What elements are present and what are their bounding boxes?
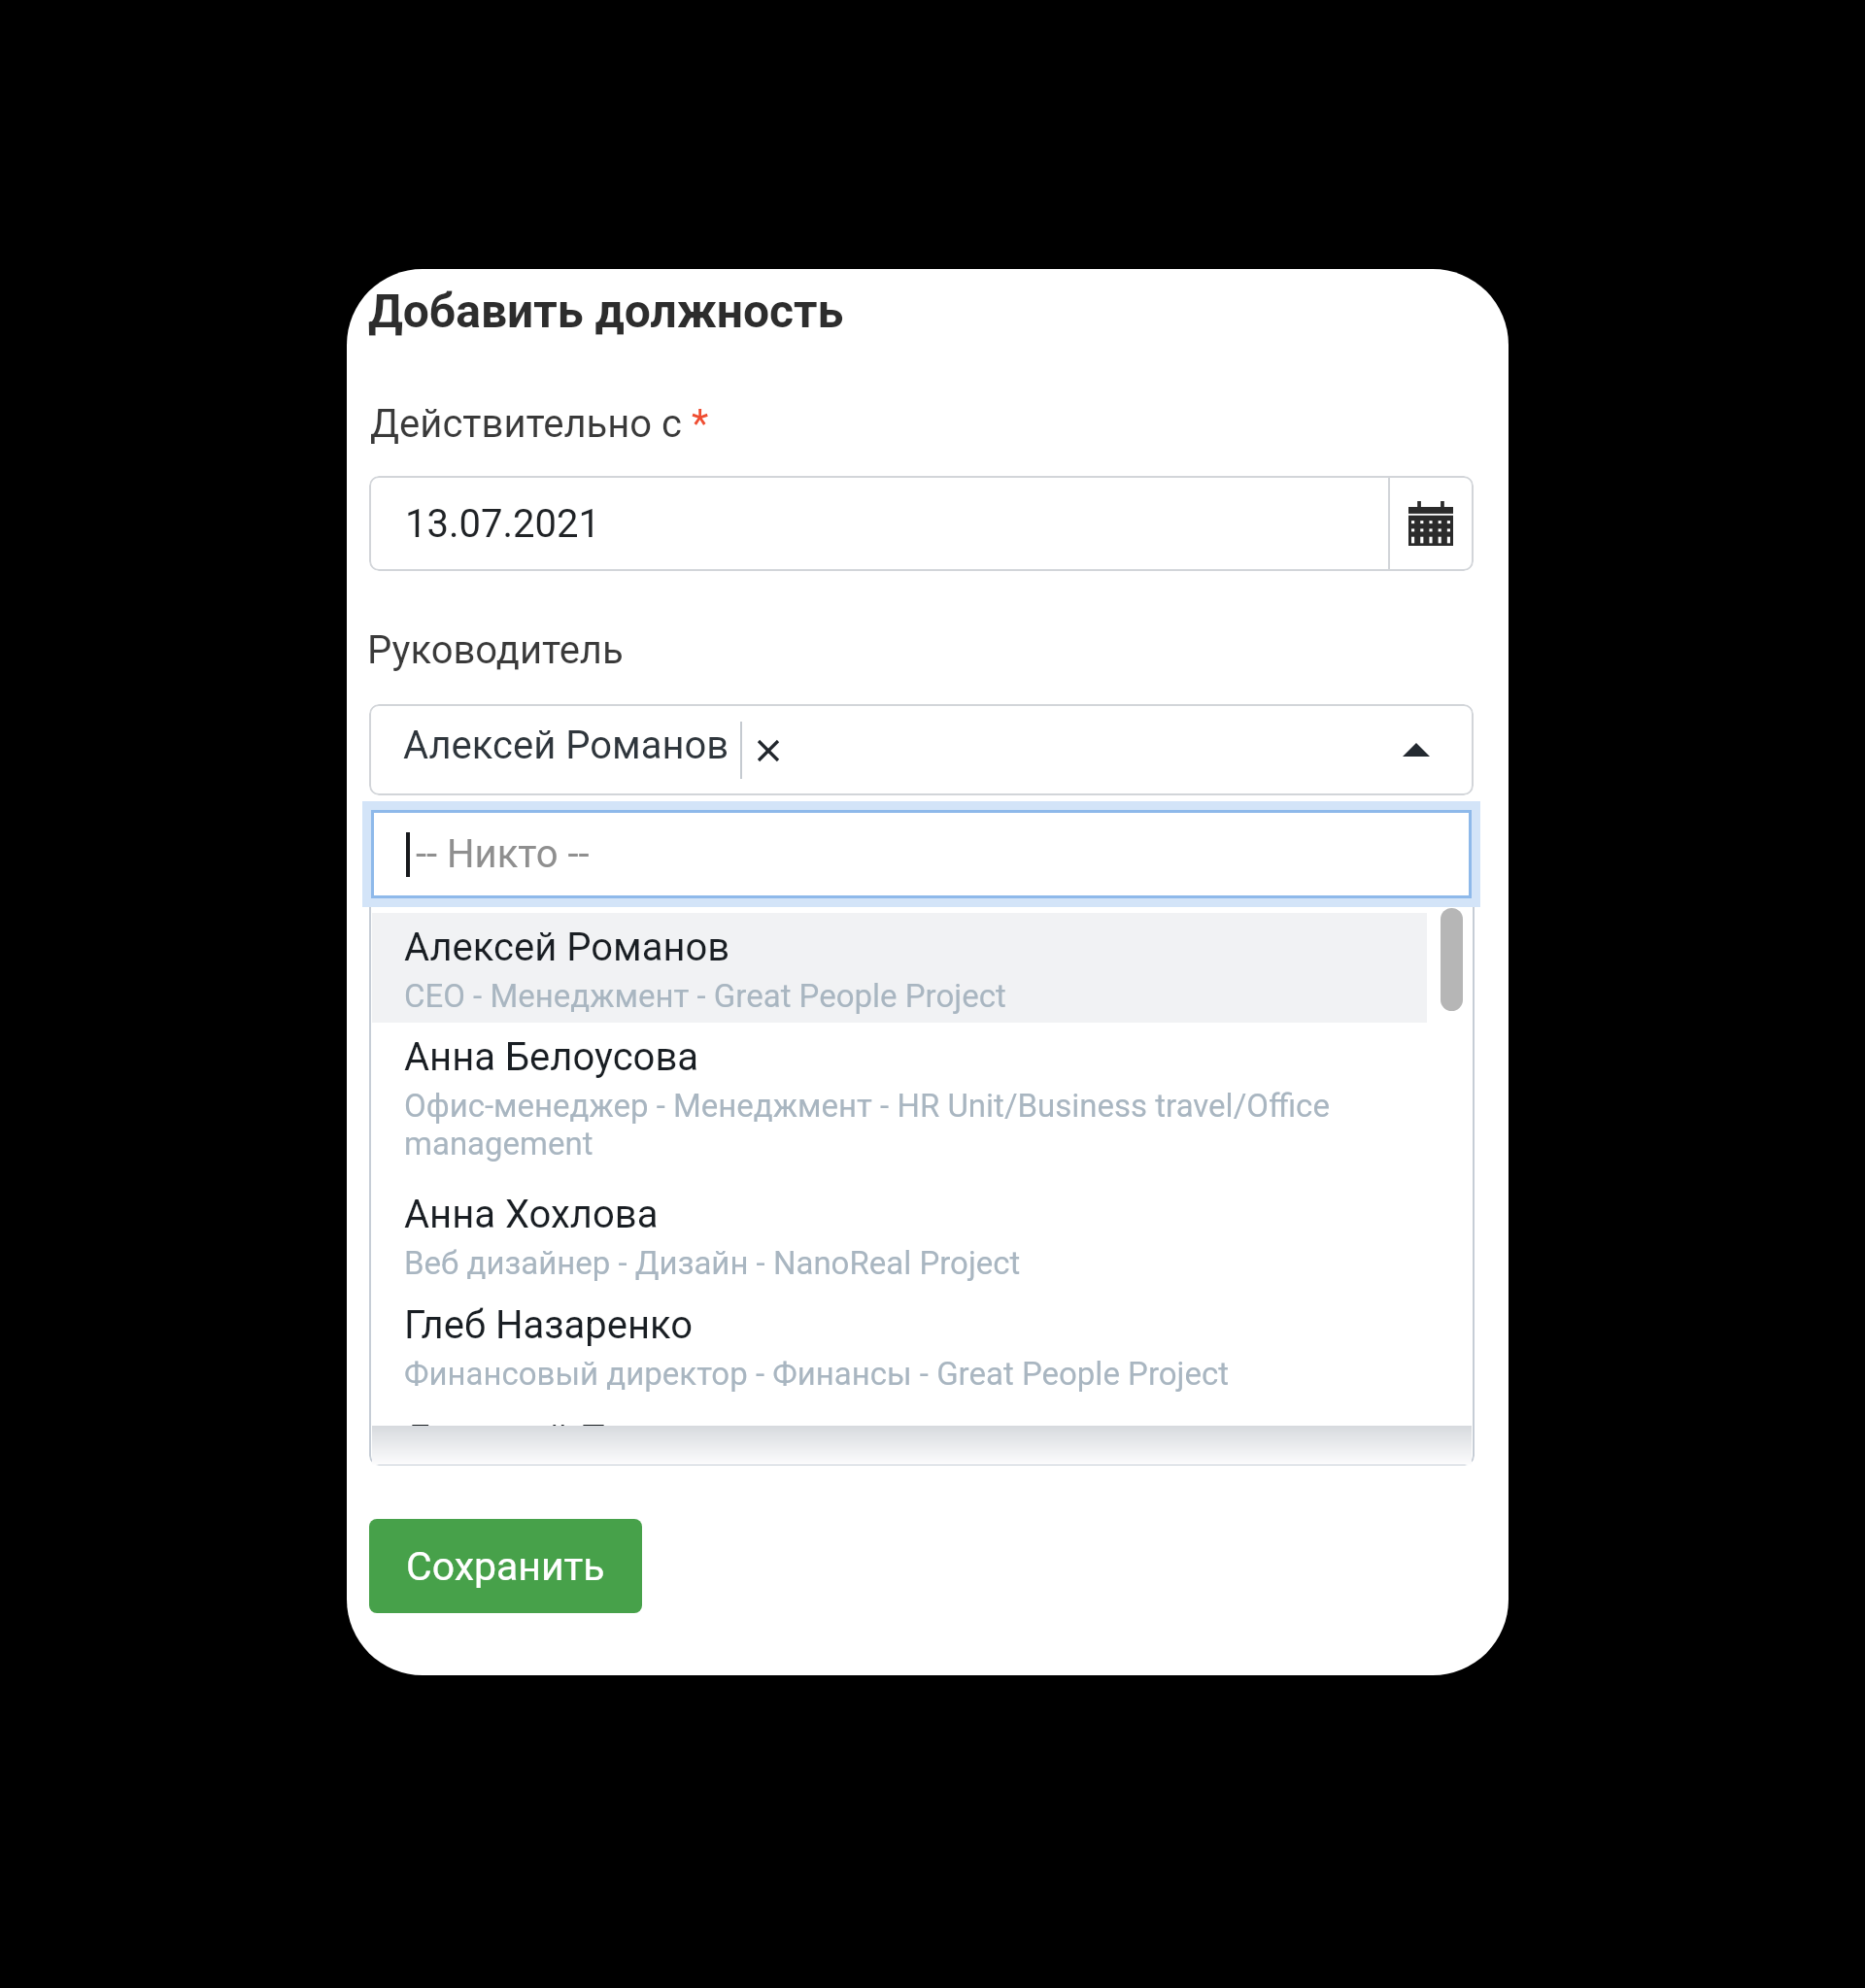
staticText: Действительно с [370,401,682,447]
button[interactable]: Алексей Романов [369,704,1474,795]
staticText: management [404,1125,593,1162]
button[interactable]: Выбрать дату [1388,476,1474,571]
button[interactable]: Дмитрий Петров [372,1405,1427,1428]
staticText: Офис-менеджер - Менеджмент - HR Unit/Bus… [404,1087,1330,1125]
button[interactable]: Анна Хохлова [372,1180,1427,1291]
staticText: -- Никто -- [416,831,590,877]
staticText: Анна Хохлова [404,1192,659,1237]
button[interactable]: Очистить [750,732,787,769]
staticText: Дмитрий Петров [404,1417,713,1428]
staticText: Веб дизайнер - Дизайн - NanoReal Project [404,1244,1021,1282]
staticText: Алексей Романов [404,925,730,970]
button[interactable]: Анна Белоусова [372,1023,1427,1180]
staticText: Сохранить [406,1543,605,1590]
staticText: Глеб Назаренко [404,1302,694,1348]
button[interactable]: Сохранить [369,1519,642,1613]
button[interactable]: 13.07.2021 [369,476,1474,571]
button[interactable]: -- Никто -- [362,801,1480,907]
staticText: Добавить должность [368,284,844,338]
button[interactable]: Свернуть список [1394,727,1439,772]
button[interactable]: Алексей Романов [372,913,1427,1023]
staticText: CEO - Менеджмент - Great People Project [404,977,1006,1015]
staticText: Анна Белоусова [404,1034,699,1080]
staticText: * [682,401,709,447]
staticText: 13.07.2021 [405,501,600,547]
staticText: Алексей Романов [403,723,729,768]
staticText: Руководитель [367,627,624,673]
staticText: Финансовый директор - Финансы - Great Pe… [404,1355,1230,1393]
button[interactable]: Глеб Назаренко [372,1291,1427,1405]
